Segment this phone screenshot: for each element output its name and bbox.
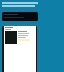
button[interactable] <box>2 12 38 21</box>
